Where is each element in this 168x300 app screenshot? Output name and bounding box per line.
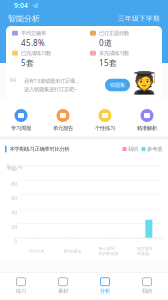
staticText: 素材 — [58, 288, 68, 294]
staticText: ·ıl — [32, 1, 38, 10]
staticText: 单元报告 — [53, 125, 73, 132]
staticText: 未完成练习数 — [99, 50, 129, 56]
button[interactable]: 精准解析 — [126, 109, 168, 132]
staticText: 练习 — [16, 288, 26, 294]
button[interactable]: 单元报告 — [42, 109, 84, 132]
staticText: 智能分析 — [8, 14, 40, 23]
button[interactable]: 分析 — [84, 278, 126, 294]
staticText: 填空题等 单选题 — [137, 246, 153, 256]
staticText: 100 — [8, 166, 17, 173]
staticText: 还有13道错题未订正哦， — [24, 77, 80, 84]
button[interactable]: 练习 — [0, 278, 42, 294]
button[interactable]: 素材 — [42, 278, 84, 294]
button[interactable]: 三年级下学期 — [118, 14, 160, 23]
staticText: 80 — [11, 180, 17, 187]
staticText: 参考值 — [147, 146, 162, 152]
staticText: 我的 — [128, 146, 138, 152]
staticText: 15套 — [99, 57, 117, 68]
staticText: 5套 — [21, 57, 34, 68]
staticText: 0 — [14, 238, 17, 245]
staticText: 已完成练习数 — [21, 50, 51, 56]
staticText: 分析 — [100, 288, 110, 294]
staticText: 40 — [11, 209, 17, 216]
staticText: 本学期练习正确率对比分析 — [10, 146, 70, 152]
staticText: 三年级下学期 — [118, 14, 160, 23]
staticText: 60 — [11, 194, 17, 202]
staticText: 学习周报 — [11, 125, 31, 132]
staticText: 9:04 — [14, 1, 28, 10]
staticText: 45.8% — [21, 37, 45, 48]
staticText: 进入错题集进行订正吧~ — [24, 86, 77, 93]
staticText: 用5的乘法 — [63, 249, 81, 254]
staticText: 精准解析 — [137, 125, 157, 132]
staticText: 错题集 — [110, 82, 125, 88]
staticText: 我的 — [142, 288, 152, 294]
staticText: ❝ — [9, 74, 17, 90]
staticText: 已订正题目数 — [99, 30, 129, 36]
button[interactable]: 我的 — [126, 278, 168, 294]
staticText: 个性练习 — [95, 125, 115, 132]
button[interactable]: 个性练习 — [84, 109, 126, 132]
staticText: 单位: % — [6, 164, 22, 171]
button[interactable]: 错题集 — [105, 79, 130, 91]
staticText: 每小题写 的四则混算 — [99, 246, 119, 256]
staticText: 🧑‍🎓 — [131, 71, 158, 95]
staticText: 20 — [11, 223, 17, 230]
button[interactable]: 学习周报 — [0, 109, 42, 132]
staticText: 平均正确率 — [21, 30, 46, 36]
staticText: 0道 — [99, 37, 112, 48]
staticText: 平方分米 — [28, 249, 44, 254]
